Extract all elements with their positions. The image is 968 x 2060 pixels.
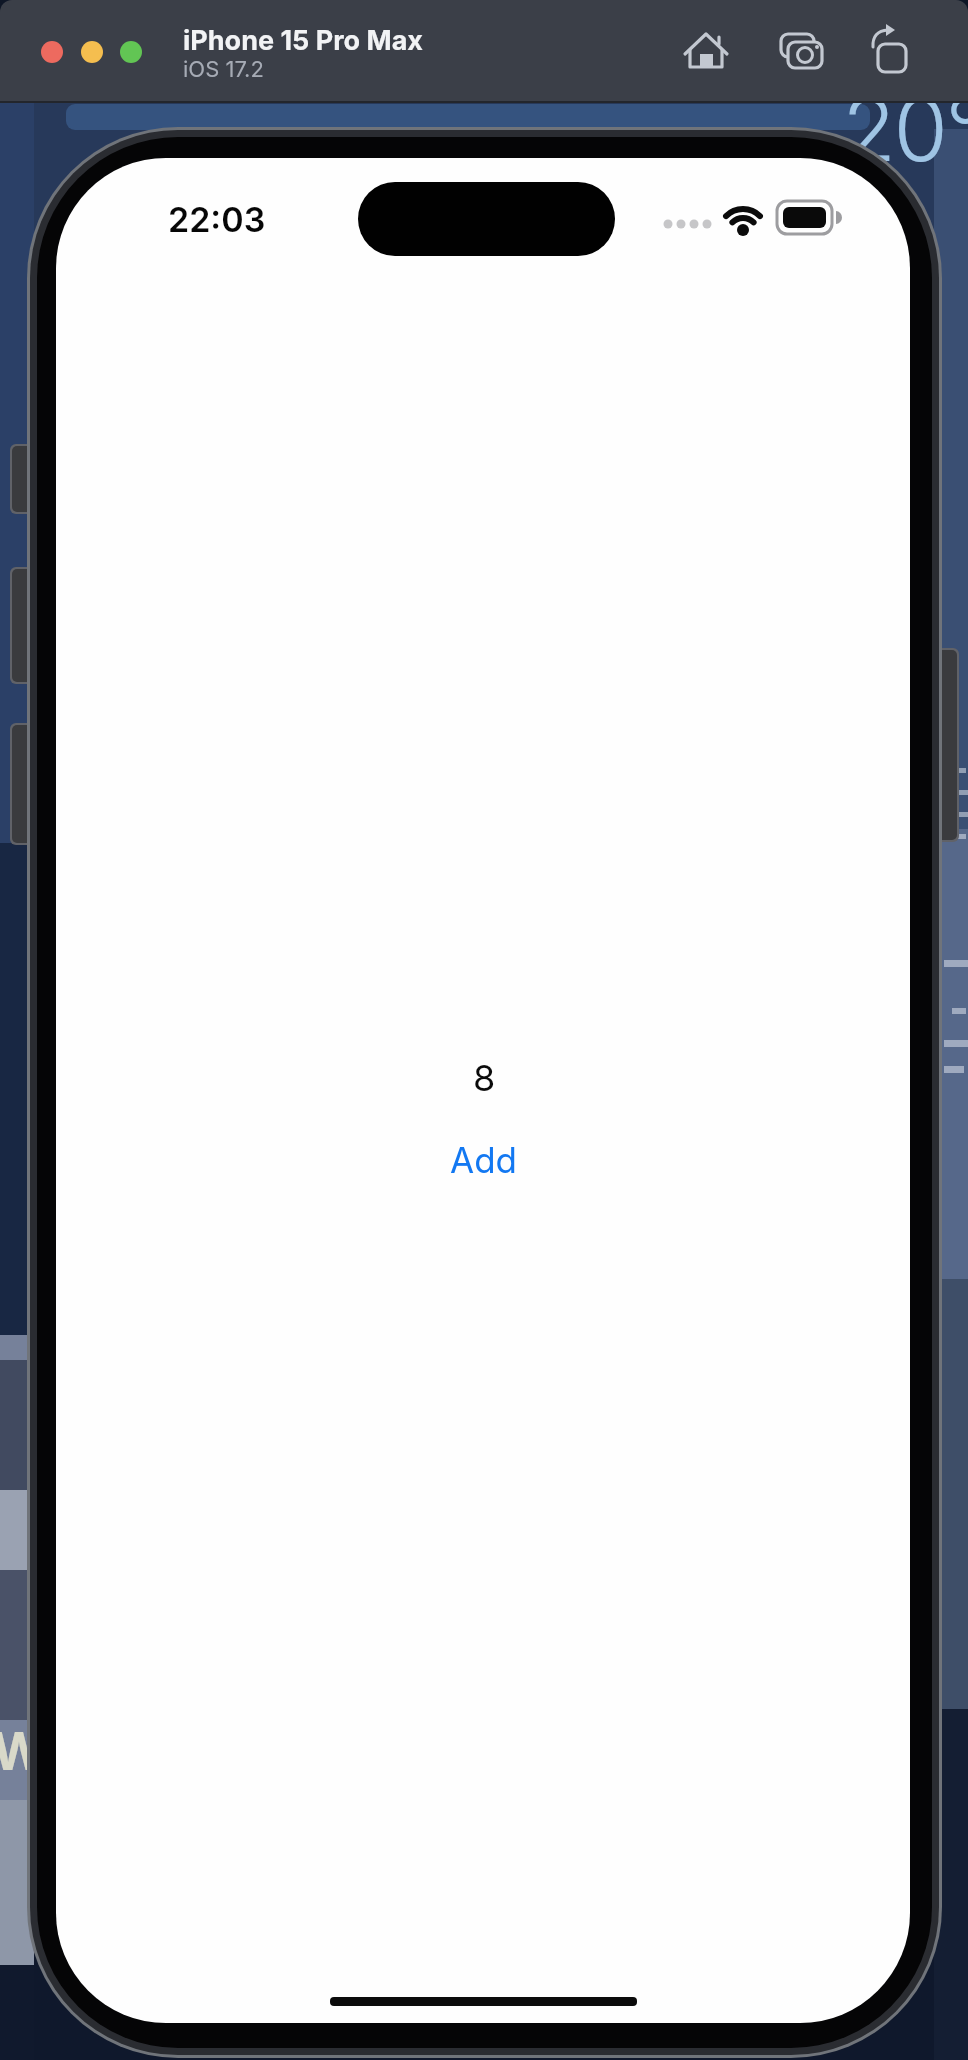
button[interactable]: Add	[450, 1139, 518, 1181]
staticText: Add	[450, 1139, 518, 1181]
staticText: 20°	[842, 76, 968, 182]
staticText: W	[0, 1720, 26, 1783]
staticText: 8	[473, 1056, 496, 1100]
staticText: iPhone 15 Pro Max	[183, 24, 424, 57]
staticText: iOS 17.2	[183, 56, 264, 83]
staticText: 22:03	[168, 199, 266, 240]
